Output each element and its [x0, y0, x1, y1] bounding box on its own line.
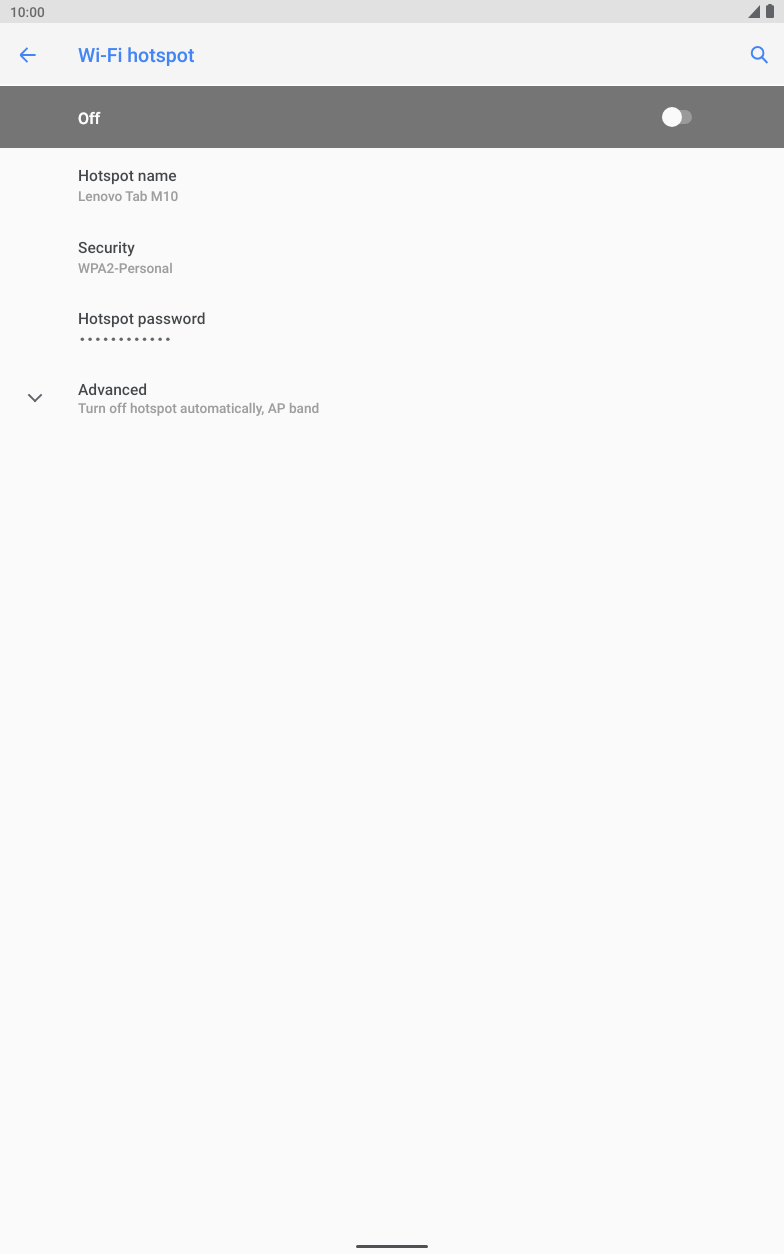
button[interactable]: Off	[0, 86, 784, 148]
button[interactable]: Hotspot name	[0, 153, 784, 224]
button[interactable]: Navigate up	[8, 35, 48, 75]
staticText: 10:00	[10, 4, 45, 20]
button[interactable]: Search	[740, 35, 780, 75]
staticText: Lenovo Tab M10	[78, 188, 179, 204]
staticText: Hotspot password	[78, 310, 206, 328]
staticText: Turn off hotspot automatically, AP band	[78, 400, 320, 416]
staticText: Wi-Fi hotspot	[78, 44, 195, 67]
button[interactable]: Advanced	[0, 367, 784, 438]
button[interactable]: Security	[0, 225, 784, 296]
button[interactable]: Hotspot password	[0, 296, 784, 367]
staticText: Security	[78, 239, 135, 257]
staticText: WPA2-Personal	[78, 260, 173, 276]
staticText: Off	[78, 109, 101, 128]
staticText: Hotspot name	[78, 167, 177, 185]
staticText: Advanced	[78, 381, 148, 399]
